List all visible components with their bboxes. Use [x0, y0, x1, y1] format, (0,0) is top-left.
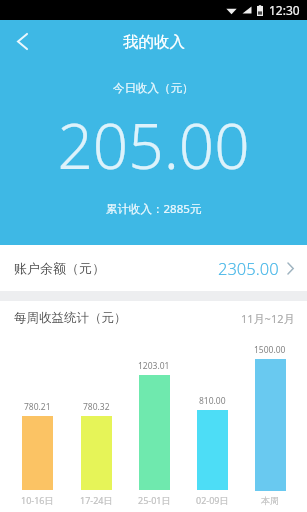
staticText: 11月~12月 — [241, 311, 295, 326]
staticText: 2305.00 — [218, 257, 279, 279]
staticText: 今日收入（元） — [113, 81, 194, 95]
staticText: 本周 — [261, 495, 279, 506]
staticText: 我的收入 — [123, 32, 185, 52]
staticText: 10-16日 — [21, 494, 54, 506]
staticText: 02-09日 — [196, 494, 229, 506]
staticText: 每周收益统计（元） — [14, 310, 127, 326]
staticText: 25-01日 — [138, 494, 171, 506]
staticText: 12:30 — [269, 2, 300, 18]
staticText: 累计收入：2885元 — [106, 201, 202, 217]
staticText: 780.32 — [83, 401, 110, 413]
button[interactable]: Back — [0, 20, 44, 63]
staticText: 810.00 — [199, 395, 226, 407]
staticText: 780.21 — [24, 401, 51, 413]
staticText: 1203.01 — [138, 360, 170, 372]
button[interactable]: 账户余额（元） — [0, 245, 307, 291]
staticText: 17-24日 — [80, 494, 113, 506]
staticText: 1500.00 — [254, 344, 286, 356]
staticText: 账户余额（元） — [14, 260, 105, 276]
staticText: 205.00 — [57, 103, 250, 187]
